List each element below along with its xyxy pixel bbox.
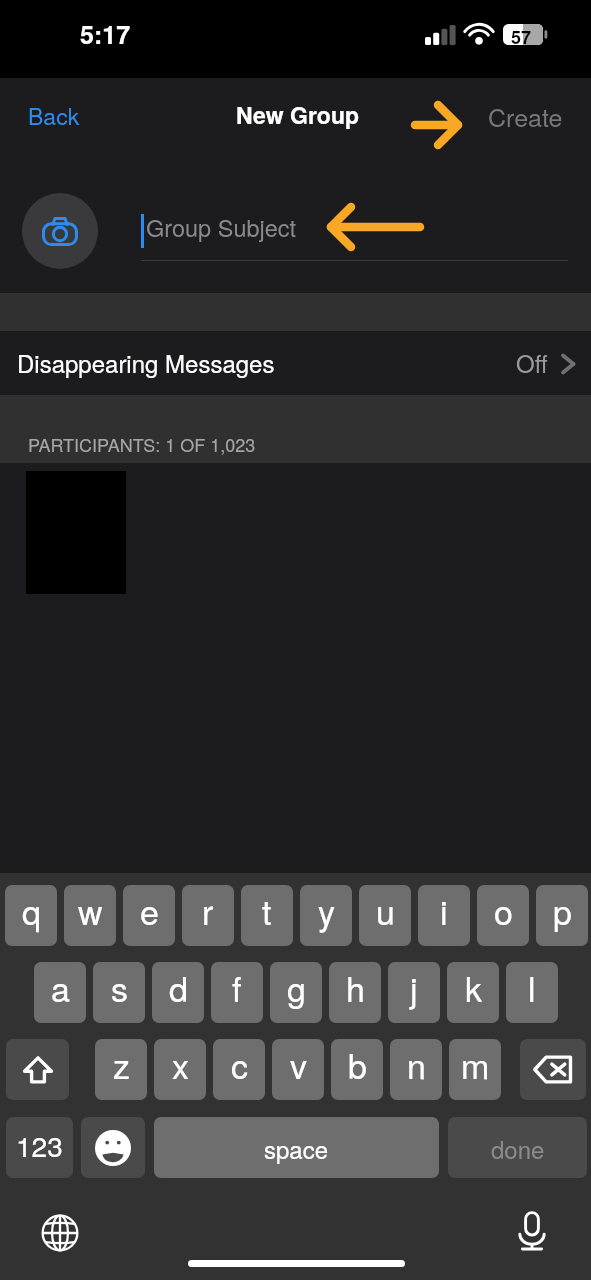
staticText: x [172,1040,189,1089]
button[interactable]: Change keyboard language [38,1211,82,1255]
staticText: t [262,886,272,935]
button[interactable]: n [390,1039,442,1100]
staticText: 123 [16,1125,63,1165]
staticText: m [461,1040,490,1089]
staticText: Back [28,99,80,132]
button[interactable]: a [34,962,86,1023]
staticText: i [440,886,448,935]
button[interactable]: x [154,1039,206,1100]
button[interactable]: c [213,1039,265,1100]
staticText: space [264,1131,329,1165]
staticText: b [348,1040,367,1089]
button[interactable]: h [329,962,381,1023]
button[interactable]: Disappearing Messages [0,331,591,395]
button[interactable]: l [506,962,558,1023]
staticText: k [465,963,482,1012]
staticText: done [491,1131,545,1165]
staticText: z [113,1040,130,1089]
staticText: n [407,1040,426,1089]
button[interactable]: Backspace [520,1039,586,1100]
staticText: Disappearing Messages [17,345,275,379]
button[interactable]: e [123,885,175,946]
staticText: j [410,963,418,1012]
button[interactable]: q [5,885,57,946]
staticText: w [78,886,103,935]
button[interactable]: f [211,962,263,1023]
button[interactable]: d [152,962,204,1023]
button[interactable]: t [241,885,293,946]
staticText: u [376,886,395,935]
button[interactable]: m [449,1039,501,1100]
staticText: y [318,886,335,935]
staticText: e [140,886,159,935]
button[interactable]: y [300,885,352,946]
staticText: f [232,963,242,1012]
button[interactable]: done [448,1117,587,1178]
button[interactable]: g [270,962,322,1023]
staticText: New Group [236,98,360,131]
button[interactable]: z [95,1039,147,1100]
staticText: Off [516,345,548,379]
staticText: r [202,886,214,935]
staticText: 5:17 [80,16,131,52]
button[interactable]: j [388,962,440,1023]
button[interactable]: s [93,962,145,1023]
button[interactable]: Create [474,89,577,143]
staticText: v [290,1040,307,1089]
staticText: 57 [511,24,532,45]
button[interactable]: Back [12,90,96,141]
staticText: Create [488,98,563,134]
staticText: s [111,963,128,1012]
staticText: l [528,963,536,1012]
staticText: g [287,963,306,1012]
button[interactable]: p [536,885,588,946]
button[interactable]: w [64,885,116,946]
staticText: d [169,963,188,1012]
staticText: Group Subject [146,210,297,244]
button[interactable]: r [182,885,234,946]
button[interactable]: 123 [6,1117,73,1178]
button[interactable]: Emoji [81,1117,145,1178]
staticText: h [346,963,365,1012]
button[interactable]: Dictate [510,1209,554,1253]
button[interactable]: b [331,1039,383,1100]
staticText: c [231,1040,248,1089]
button[interactable]: space [154,1117,439,1178]
button[interactable]: k [447,962,499,1023]
button[interactable]: u [359,885,411,946]
button[interactable]: i [418,885,470,946]
button[interactable]: v [272,1039,324,1100]
button[interactable]: Add group photo [22,193,98,269]
staticText: o [494,886,513,935]
button[interactable]: o [477,885,529,946]
staticText: a [51,963,70,1012]
button[interactable]: Shift [6,1039,69,1100]
staticText: PARTICIPANTS: 1 OF 1,023 [28,431,256,457]
staticText: p [553,886,572,935]
staticText: q [22,886,41,935]
